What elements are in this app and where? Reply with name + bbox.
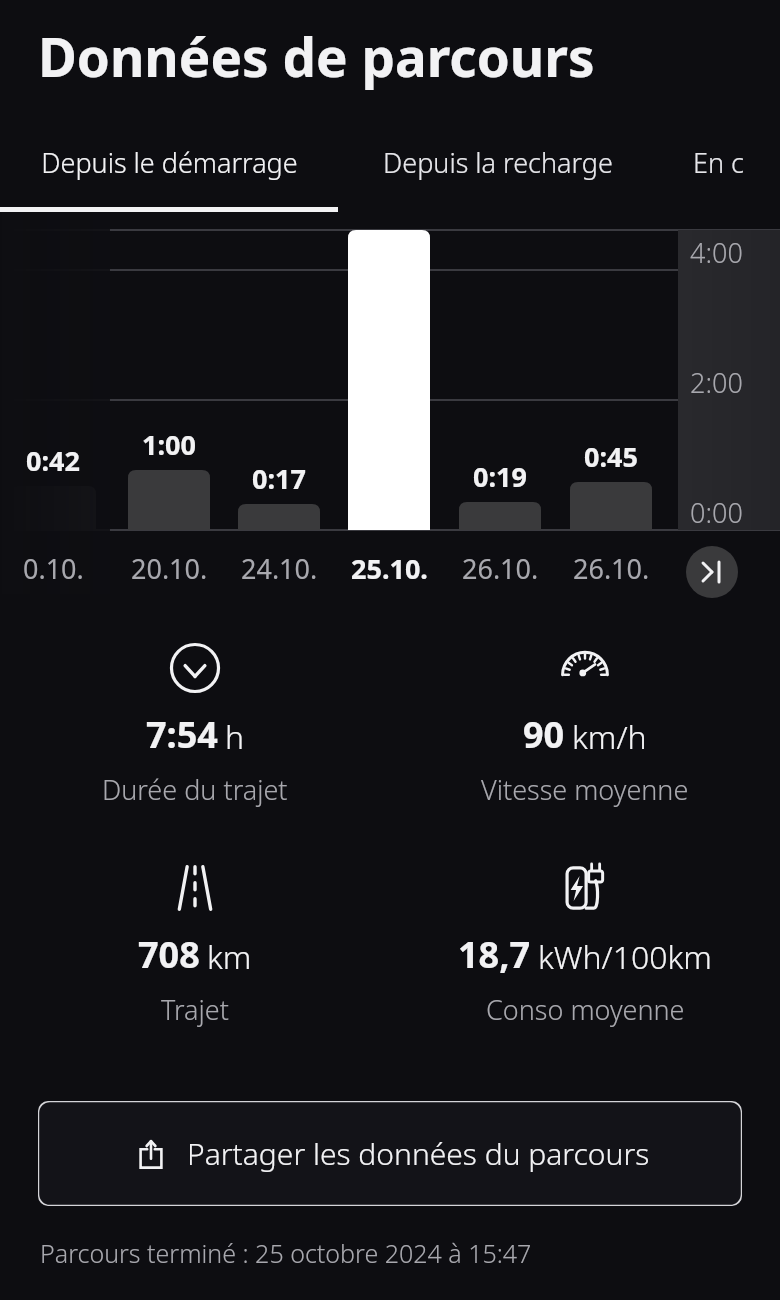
staticText: Depuis le démarrage <box>41 144 298 181</box>
staticText: Vitesse moyenne <box>481 771 689 808</box>
button[interactable]: Depuis le démarrage <box>0 112 338 212</box>
staticText: Partager les données du parcours <box>187 1133 650 1174</box>
staticText: h <box>225 715 245 759</box>
staticText: km/h <box>572 715 647 759</box>
staticText: 708 <box>138 930 200 979</box>
button[interactable]: Skip to latest <box>686 546 738 598</box>
button[interactable]: En c <box>658 112 778 212</box>
staticText: 7:54 <box>146 710 218 759</box>
staticText: 0:45 <box>584 438 638 475</box>
staticText: 1:00 <box>142 426 196 463</box>
staticText: 24.10. <box>241 550 318 587</box>
staticText: Parcours terminé : 25 octobre 2024 à 15:… <box>40 1236 532 1270</box>
staticText: En c <box>693 144 744 181</box>
staticText: km <box>207 935 252 979</box>
button[interactable]: 708 <box>0 860 390 1028</box>
button[interactable]: 18,7 <box>390 860 780 1028</box>
staticText: Trajet <box>161 991 229 1028</box>
staticText: 0:19 <box>473 458 527 495</box>
staticText: Données de parcours <box>38 20 595 92</box>
staticText: 4:00 <box>690 234 743 271</box>
button[interactable]: Partager les données du parcours <box>38 1101 742 1206</box>
staticText: 90 <box>523 710 565 759</box>
button[interactable]: Depuis la recharge <box>338 112 658 212</box>
staticText: 2:00 <box>690 364 743 401</box>
staticText: 18,7 <box>458 930 531 979</box>
staticText: 20.10. <box>131 550 208 587</box>
button[interactable]: 90 <box>390 640 780 808</box>
staticText: kWh/100km <box>538 935 712 979</box>
staticText: 0:17 <box>252 460 306 497</box>
staticText: 26.10. <box>462 550 539 587</box>
staticText: 26.10. <box>573 550 650 587</box>
staticText: Depuis la recharge <box>383 144 613 181</box>
staticText: 0:00 <box>690 494 743 531</box>
staticText: 25.10. <box>351 550 428 587</box>
button[interactable]: 7:54 <box>0 640 390 808</box>
staticText: Conso moyenne <box>486 991 685 1028</box>
staticText: 0.10. <box>23 550 84 587</box>
staticText: Durée du trajet <box>102 771 288 808</box>
staticText: 0:42 <box>26 442 80 479</box>
